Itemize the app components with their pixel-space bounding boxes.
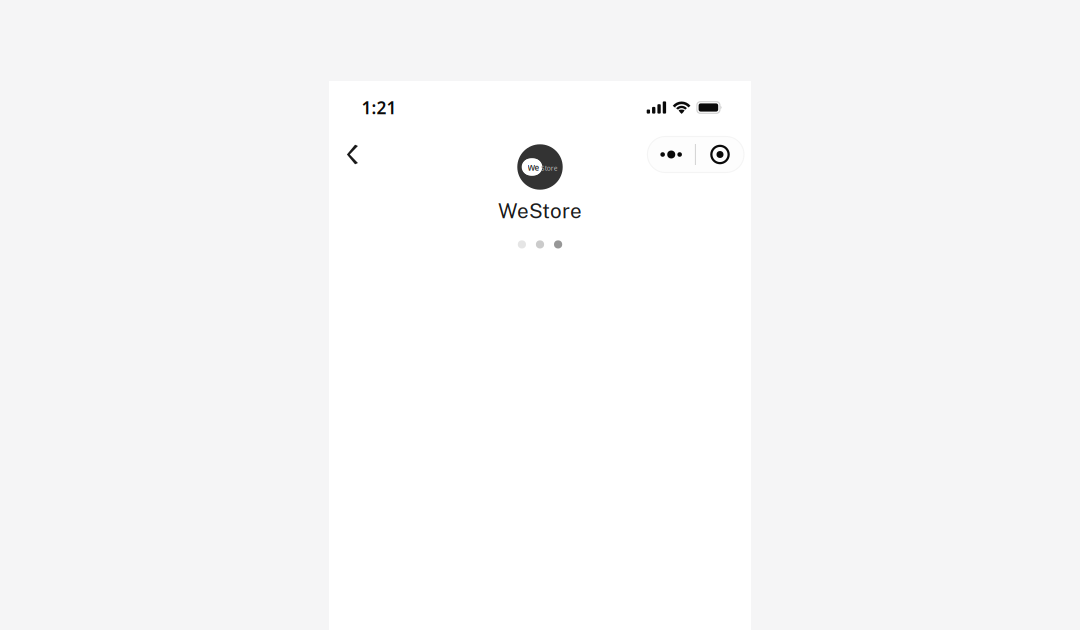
- staticText: We: [528, 162, 540, 173]
- staticText: Store: [541, 164, 558, 173]
- staticText: 1:21: [361, 96, 396, 119]
- button[interactable]: More: [647, 136, 695, 172]
- staticText: WeStore: [498, 199, 582, 223]
- button[interactable]: Back: [329, 136, 380, 172]
- button[interactable]: Close mini program: [696, 136, 744, 172]
